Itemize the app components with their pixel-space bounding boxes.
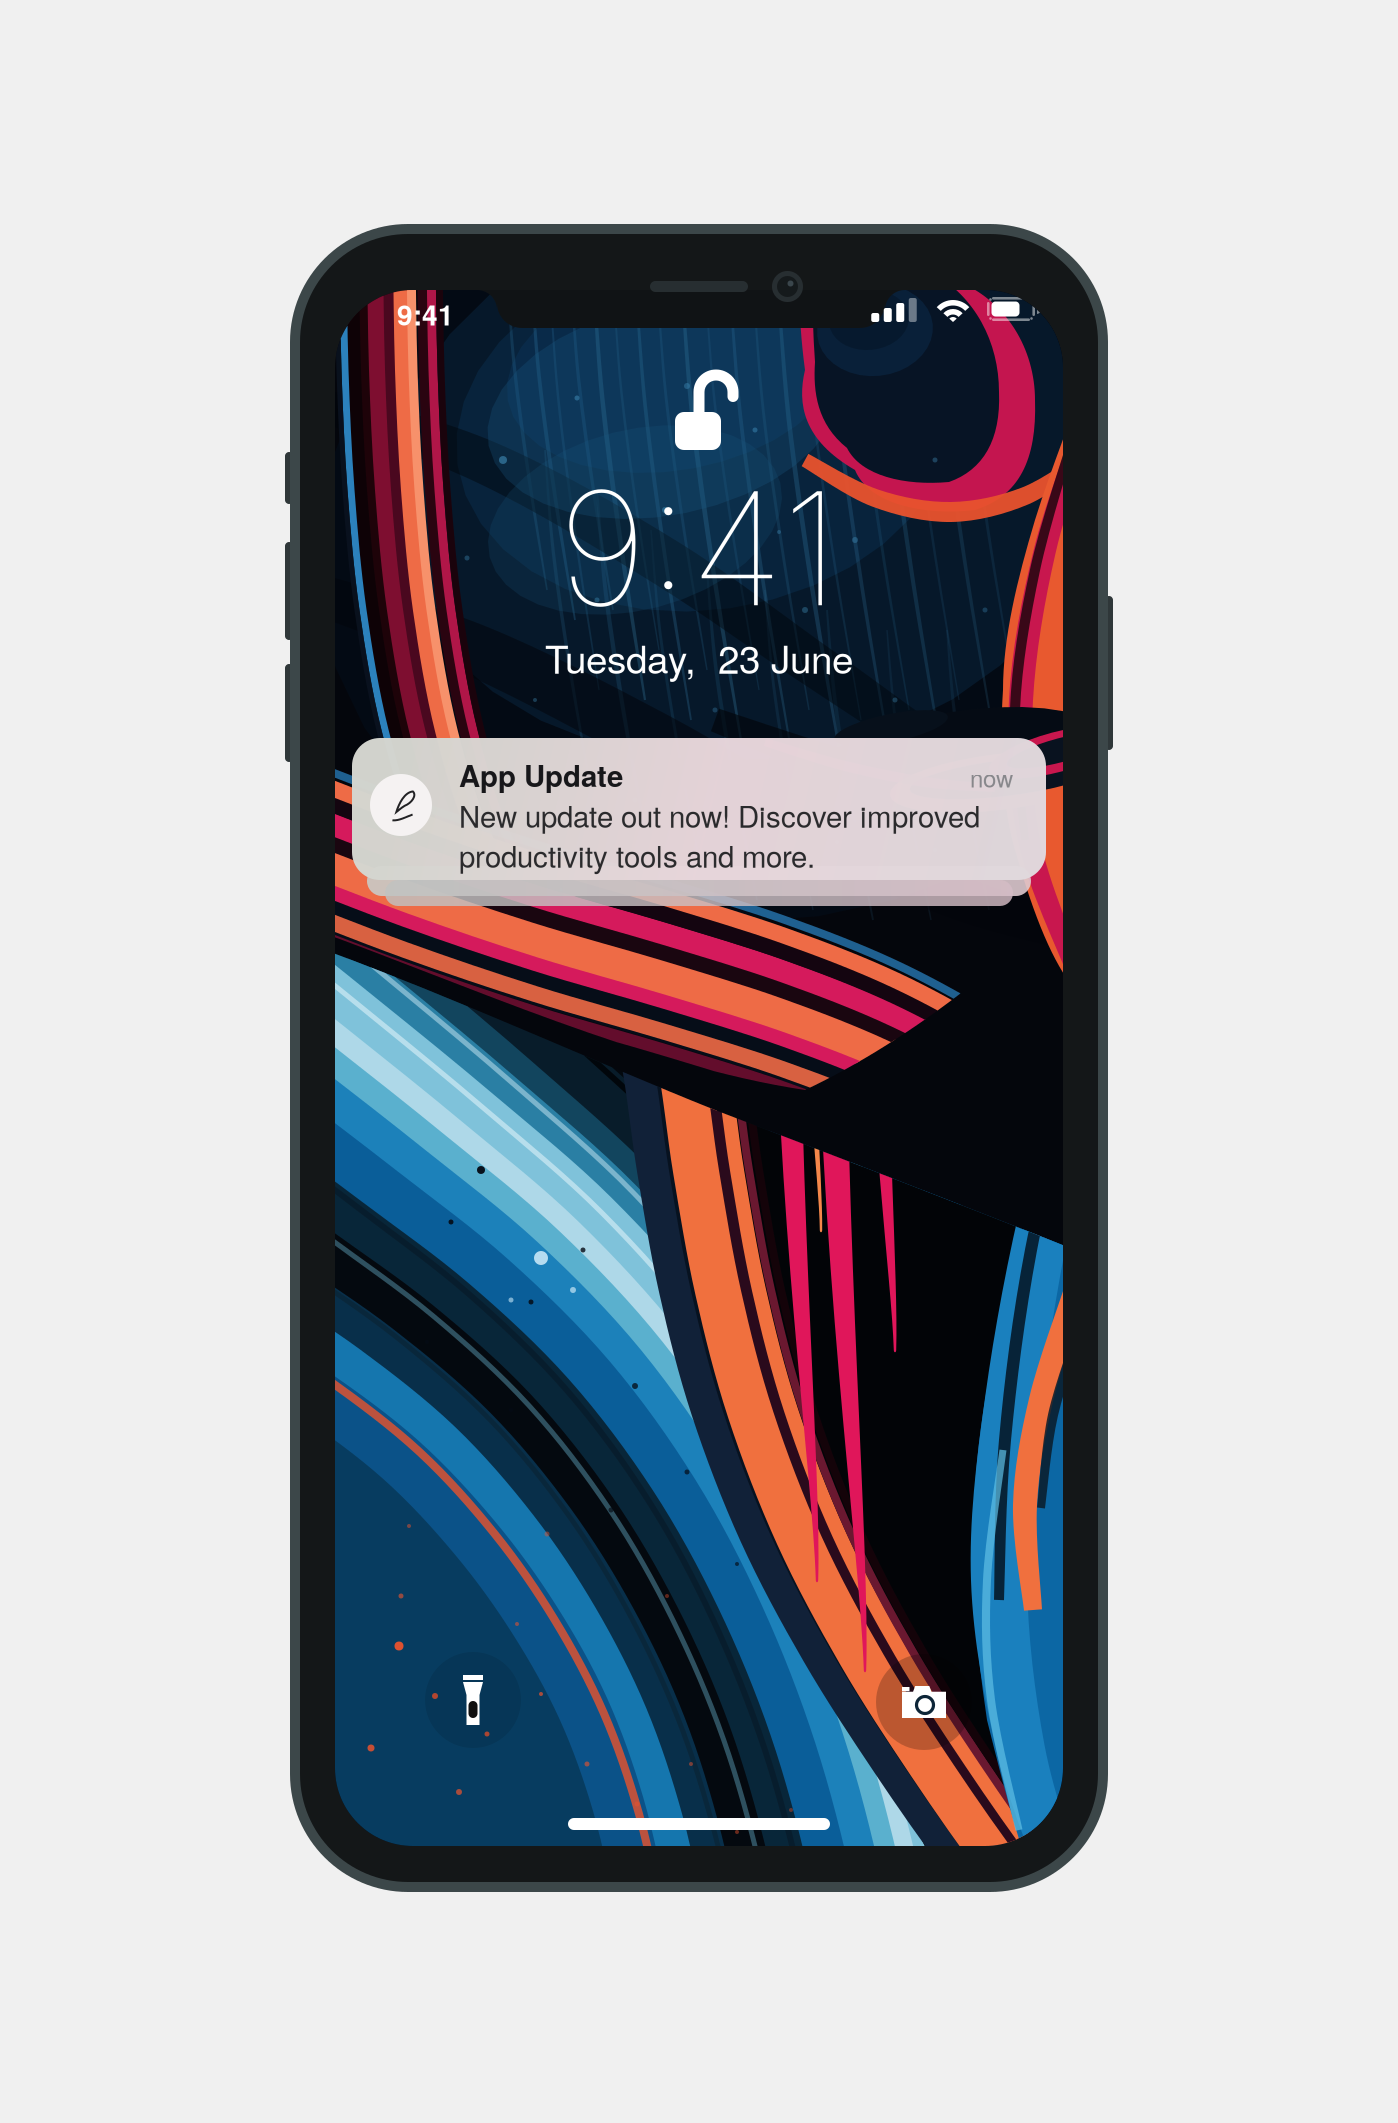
button[interactable]: Camera bbox=[876, 1654, 972, 1750]
button[interactable]: Flashlight bbox=[425, 1652, 521, 1748]
staticText: productivity tools and more. bbox=[459, 834, 815, 876]
staticText: now bbox=[970, 760, 1013, 794]
button[interactable]: App Update bbox=[352, 738, 1046, 880]
staticText: New update out now! Discover improved bbox=[459, 794, 980, 836]
staticText: 9:41 bbox=[558, 453, 840, 643]
staticText: 9:41 bbox=[397, 294, 454, 334]
staticText: Tuesday, 23 June bbox=[545, 629, 853, 685]
staticText: App Update bbox=[459, 754, 623, 796]
